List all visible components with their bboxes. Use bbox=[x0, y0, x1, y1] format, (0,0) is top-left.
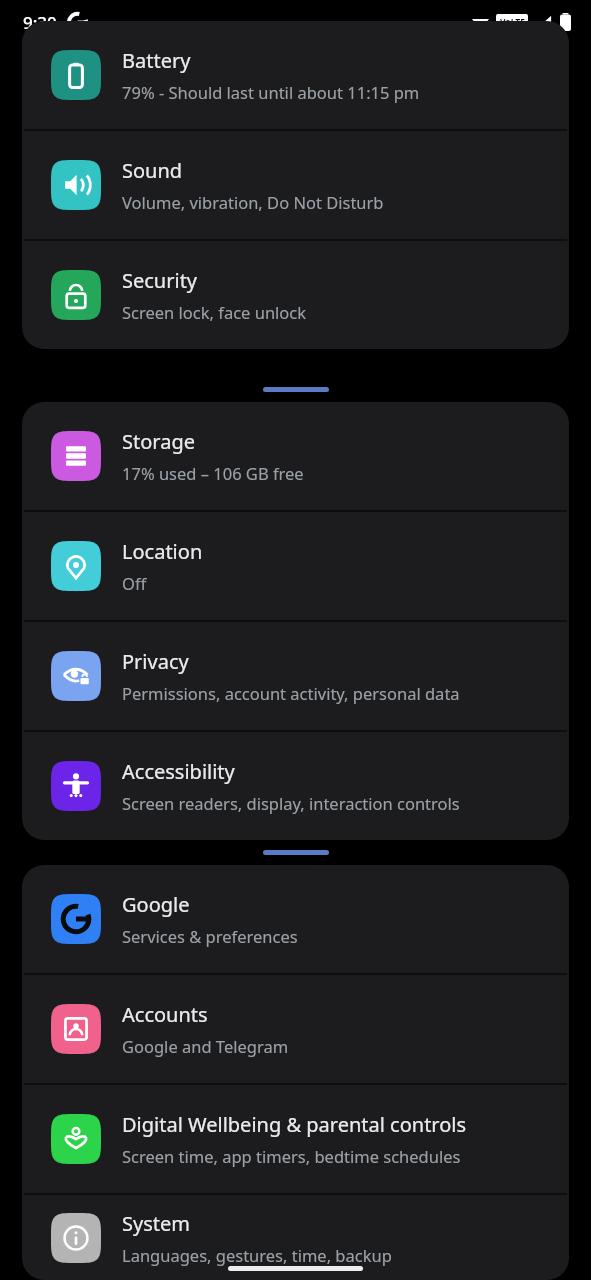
staticText: Privacy bbox=[122, 648, 189, 675]
button[interactable]: Privacy bbox=[22, 622, 569, 730]
staticText: VoLTE bbox=[500, 16, 525, 28]
staticText: Languages, gestures, time, backup bbox=[122, 1244, 392, 1266]
staticText: Google and Telegram bbox=[122, 1035, 289, 1057]
button[interactable]: Accessibility bbox=[22, 732, 569, 840]
staticText: Services & preferences bbox=[122, 925, 298, 947]
staticText: Volume, vibration, Do Not Disturb bbox=[122, 191, 384, 213]
staticText: Accessibility bbox=[122, 758, 235, 785]
button[interactable]: Accounts bbox=[22, 975, 569, 1083]
staticText: Location bbox=[122, 538, 203, 565]
staticText: System bbox=[122, 1210, 190, 1237]
button[interactable]: Google bbox=[22, 865, 569, 973]
staticText: Security bbox=[122, 267, 198, 294]
staticText: Storage bbox=[122, 428, 195, 455]
button[interactable]: Digital Wellbeing & parental controls bbox=[22, 1085, 569, 1193]
button[interactable]: Security bbox=[22, 241, 569, 349]
staticText: 17% used – 106 GB free bbox=[122, 462, 304, 484]
staticText: 9:30 bbox=[23, 11, 57, 34]
staticText: Screen lock, face unlock bbox=[122, 301, 307, 323]
button[interactable]: Storage bbox=[22, 402, 569, 510]
staticText: Permissions, account activity, personal … bbox=[122, 682, 460, 704]
staticText: Sound bbox=[122, 157, 183, 184]
staticText: 79% - Should last until about 11:15 pm bbox=[122, 81, 420, 103]
staticText: Screen time, app timers, bedtime schedul… bbox=[122, 1145, 461, 1167]
staticText: Accounts bbox=[122, 1001, 208, 1028]
button[interactable]: System bbox=[22, 1195, 569, 1280]
button[interactable]: Battery bbox=[22, 21, 569, 129]
staticText: Google bbox=[122, 891, 190, 918]
button[interactable]: Location bbox=[22, 512, 569, 620]
staticText: Screen readers, display, interaction con… bbox=[122, 792, 460, 814]
staticText: Battery bbox=[122, 47, 191, 74]
button[interactable]: Sound bbox=[22, 131, 569, 239]
staticText: Off bbox=[122, 572, 147, 594]
staticText: Digital Wellbeing & parental controls bbox=[122, 1111, 467, 1138]
